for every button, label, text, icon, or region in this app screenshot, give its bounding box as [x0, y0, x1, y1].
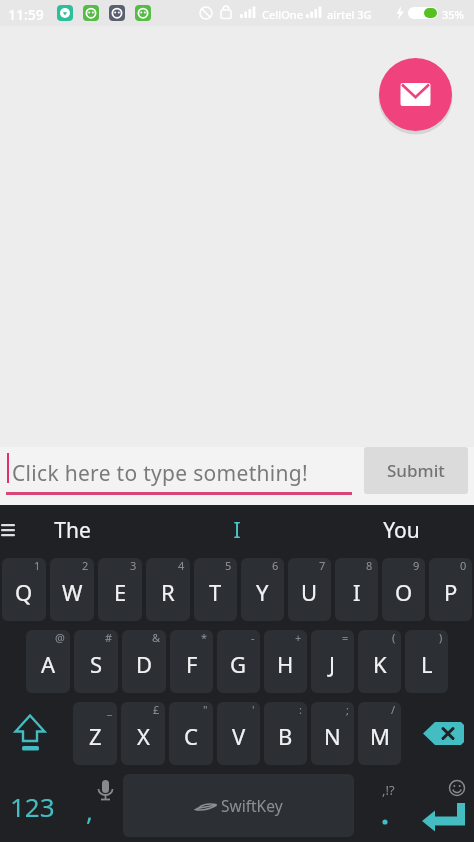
staticText: T — [209, 577, 222, 607]
staticText: _ — [107, 702, 112, 717]
staticText: 6 — [272, 558, 279, 573]
button[interactable]: Y — [241, 558, 284, 621]
staticText: The — [54, 516, 91, 545]
staticText: Z — [89, 721, 102, 751]
button[interactable]: G — [217, 630, 260, 693]
button[interactable] — [416, 771, 474, 842]
staticText: - — [251, 630, 255, 645]
staticText: = — [342, 630, 349, 645]
button[interactable]: J — [311, 630, 354, 693]
staticText: 123 — [10, 789, 55, 824]
button[interactable]: R — [146, 558, 190, 621]
staticText: X — [137, 721, 150, 751]
button[interactable]: X — [121, 702, 165, 765]
button[interactable]: U — [288, 558, 331, 621]
staticText: / — [391, 702, 396, 717]
button[interactable]: 123 — [0, 771, 64, 842]
staticText: 2 — [82, 558, 89, 573]
button[interactable]: A — [26, 630, 70, 693]
staticText: O — [395, 577, 413, 607]
staticText: SwiftKey — [221, 795, 283, 816]
button[interactable]: B — [264, 702, 307, 765]
staticText: K — [373, 649, 387, 679]
staticText: Submit — [387, 459, 445, 482]
staticText: C — [184, 721, 198, 751]
staticText: 0 — [460, 558, 467, 573]
staticText: E — [114, 577, 127, 607]
button[interactable]: P — [429, 558, 472, 621]
staticText: I — [353, 577, 361, 607]
button[interactable]: V — [217, 702, 260, 765]
staticText: Q — [15, 577, 33, 607]
button[interactable] — [378, 57, 453, 132]
button[interactable]: Z — [73, 702, 117, 765]
staticText: CellOne — [262, 7, 304, 22]
staticText: 9 — [413, 558, 420, 573]
staticText: ' — [252, 702, 255, 717]
staticText: L — [421, 649, 433, 679]
staticText: ,!? — [382, 781, 395, 799]
staticText: 4 — [178, 558, 185, 573]
staticText: , — [86, 793, 93, 828]
staticText: : — [299, 702, 302, 717]
staticText: H — [277, 649, 294, 679]
staticText: M — [370, 721, 390, 751]
button[interactable]: Click here to type something! — [12, 459, 308, 488]
staticText: J — [329, 649, 336, 679]
staticText: 5 — [225, 558, 232, 573]
button[interactable]: H — [264, 630, 307, 693]
staticText: 35% — [442, 7, 464, 22]
button[interactable]: D — [122, 630, 166, 693]
staticText: A — [41, 649, 56, 679]
button[interactable] — [403, 699, 474, 771]
staticText: P — [444, 577, 458, 607]
staticText: " — [203, 702, 208, 717]
button[interactable]: I — [335, 558, 378, 621]
button[interactable]: ,!? — [356, 771, 416, 842]
button[interactable]: , — [64, 771, 121, 842]
staticText: 7 — [319, 558, 326, 573]
button[interactable] — [0, 699, 71, 771]
staticText: ; — [346, 702, 349, 717]
staticText: * — [201, 630, 208, 645]
button[interactable]: F — [170, 630, 213, 693]
button[interactable]: M — [358, 702, 401, 765]
staticText: @ — [55, 630, 65, 645]
staticText: D — [136, 649, 153, 679]
staticText: airtel 3G — [327, 7, 372, 22]
staticText: B — [278, 721, 293, 751]
button[interactable]: K — [358, 630, 401, 693]
button[interactable]: Q — [2, 558, 46, 621]
button[interactable]: You — [356, 505, 446, 555]
button[interactable]: C — [169, 702, 213, 765]
button[interactable]: I — [192, 505, 282, 555]
button[interactable]: O — [382, 558, 425, 621]
button[interactable]: L — [405, 630, 448, 693]
staticText: V — [232, 721, 246, 751]
staticText: U — [301, 577, 318, 607]
button[interactable]: W — [50, 558, 94, 621]
button[interactable] — [1, 523, 17, 539]
staticText: 1 — [34, 558, 41, 573]
staticText: F — [186, 649, 198, 679]
button[interactable]: The — [27, 505, 117, 555]
staticText: N — [324, 721, 341, 751]
button[interactable]: Submit — [364, 447, 468, 494]
button[interactable]: T — [194, 558, 237, 621]
staticText: £ — [153, 702, 160, 717]
button[interactable]: E — [98, 558, 142, 621]
button[interactable]: S — [74, 630, 118, 693]
staticText: Y — [256, 577, 269, 607]
staticText: + — [295, 630, 302, 645]
staticText: ) — [439, 630, 443, 645]
staticText: I — [233, 516, 241, 545]
staticText: S — [90, 649, 103, 679]
button[interactable]: SwiftKey — [123, 774, 354, 837]
staticText: G — [230, 649, 247, 679]
staticText: R — [161, 577, 175, 607]
staticText: 8 — [366, 558, 373, 573]
staticText: 11:59 — [8, 5, 44, 24]
button[interactable]: N — [311, 702, 354, 765]
staticText: & — [152, 630, 161, 645]
staticText: 3 — [130, 558, 137, 573]
